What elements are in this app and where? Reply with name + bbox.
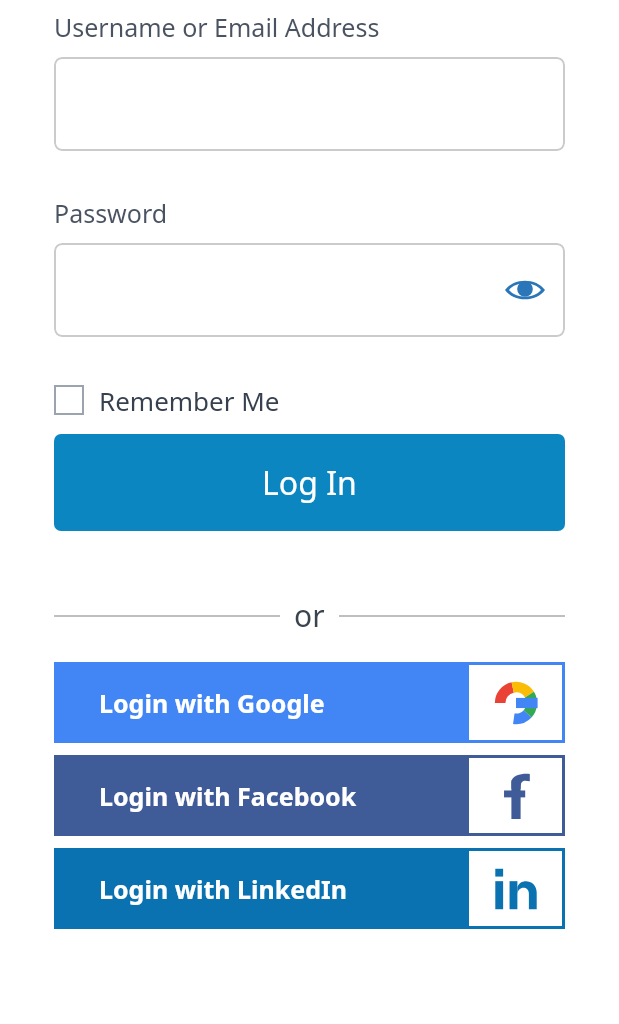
staticText: Log In (262, 461, 357, 505)
button[interactable]: Login with LinkedIn (54, 848, 565, 929)
button[interactable]: Login with Facebook (54, 755, 565, 836)
button[interactable]: Login with Google (54, 662, 565, 743)
button[interactable]: Remember Me (54, 380, 280, 420)
button[interactable] (54, 57, 565, 151)
staticText: Login with Facebook (99, 779, 357, 813)
staticText: Username or Email Address (54, 10, 380, 44)
button[interactable]: Show password (54, 243, 565, 337)
staticText: Login with LinkedIn (99, 872, 348, 906)
staticText: Password (54, 196, 168, 230)
staticText: or (294, 595, 325, 636)
button[interactable]: Show password (503, 268, 547, 312)
staticText: Remember Me (99, 383, 280, 418)
staticText: Login with Google (99, 686, 325, 720)
button[interactable]: Log In (54, 434, 565, 531)
